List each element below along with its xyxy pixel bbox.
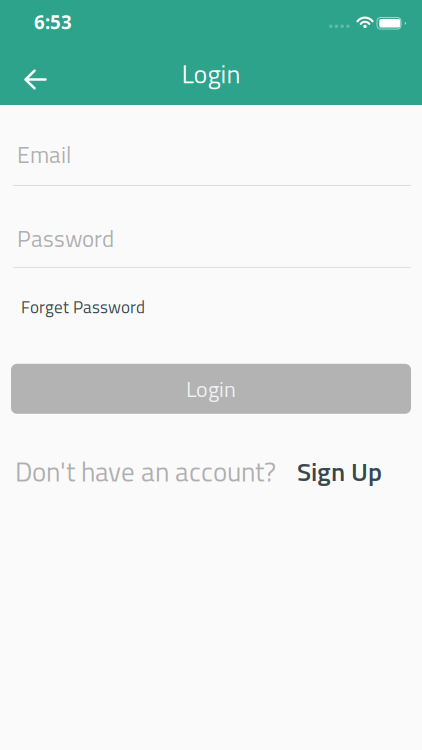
button[interactable]: Login	[11, 364, 411, 414]
staticText: Sign Up	[297, 452, 382, 491]
staticText: Password	[17, 221, 114, 256]
button[interactable]: Sign Up	[297, 452, 422, 491]
staticText: Login	[181, 54, 240, 93]
button[interactable]: Forget Password	[0, 294, 145, 320]
staticText: 6:53	[34, 10, 72, 34]
staticText: Forget Password	[21, 294, 145, 320]
staticText: Login	[186, 372, 236, 406]
button[interactable]: Email	[0, 137, 71, 172]
button[interactable]: Password	[0, 221, 114, 256]
staticText: Email	[17, 137, 71, 172]
staticText: Don't have an account?	[15, 451, 276, 492]
button[interactable]: Back	[0, 46, 47, 102]
